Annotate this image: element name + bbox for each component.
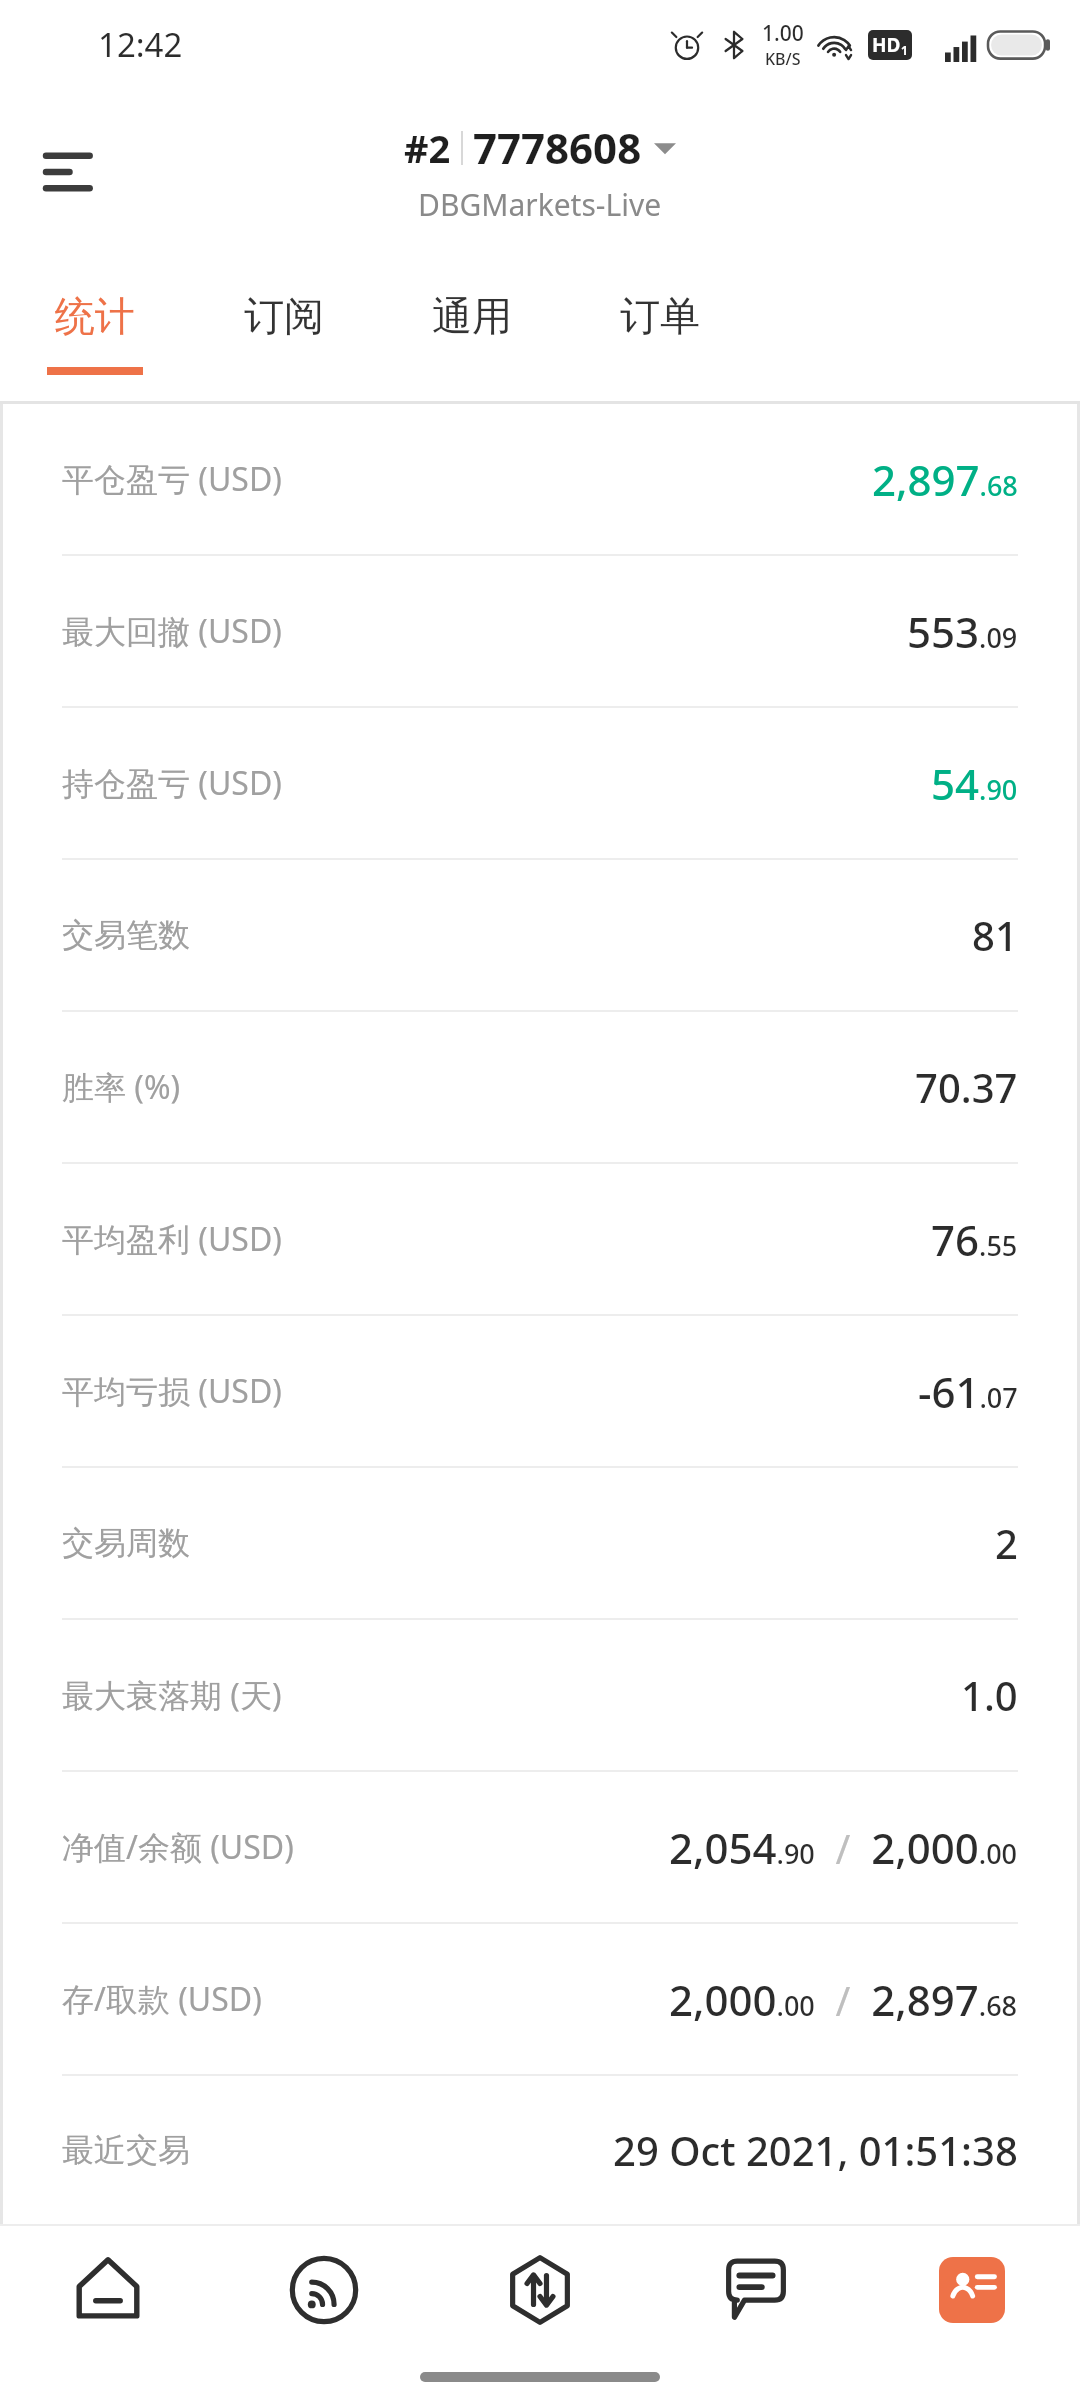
button[interactable]: 订阅 bbox=[190, 256, 378, 404]
staticText: -61.07 bbox=[918, 1363, 1018, 1420]
staticText: 通用 bbox=[432, 291, 512, 341]
staticText: 平均亏损 (USD) bbox=[62, 1369, 282, 1413]
staticText: DBGMarkets-Live bbox=[418, 184, 662, 225]
staticText: 订单 bbox=[620, 291, 700, 341]
staticText: 29 Oct 2021, 01:51:38 bbox=[613, 2123, 1018, 2177]
button[interactable]: Trade bbox=[432, 2226, 648, 2354]
staticText: 平仓盈亏 (USD) bbox=[62, 457, 282, 501]
staticText: 1 bbox=[901, 42, 908, 58]
staticText: 2 bbox=[995, 1516, 1018, 1570]
button[interactable]: 平均亏损 (USD) bbox=[0, 1316, 1080, 1466]
button[interactable]: #2 bbox=[404, 119, 676, 225]
staticText: 持仓盈亏 (USD) bbox=[62, 761, 282, 805]
staticText: 净值/余额 (USD) bbox=[62, 1825, 294, 1869]
staticText: 76.55 bbox=[931, 1211, 1018, 1268]
button[interactable]: 持仓盈亏 (USD) bbox=[0, 708, 1080, 858]
staticText: 交易周数 bbox=[62, 1523, 190, 1563]
staticText: 存/取款 (USD) bbox=[62, 1977, 262, 2021]
staticText: 最大回撤 (USD) bbox=[62, 609, 282, 653]
staticText: 12:42 bbox=[98, 22, 183, 67]
staticText: 2,054.90 / 2,000.00 bbox=[669, 1819, 1018, 1876]
button[interactable]: 最大回撤 (USD) bbox=[0, 556, 1080, 706]
button[interactable]: Menu bbox=[28, 126, 120, 218]
button[interactable]: 通用 bbox=[378, 256, 566, 404]
staticText: 最大衰落期 (天) bbox=[62, 1673, 282, 1717]
staticText: 54.90 bbox=[931, 755, 1018, 812]
button[interactable]: Home bbox=[0, 2226, 216, 2354]
staticText: 胜率 (%) bbox=[62, 1065, 181, 1109]
button[interactable]: 交易周数 bbox=[0, 1468, 1080, 1618]
staticText: 7778608 bbox=[473, 119, 642, 176]
staticText: 统计 bbox=[55, 291, 135, 341]
staticText: 553.09 bbox=[907, 603, 1018, 660]
button[interactable]: 统计 bbox=[0, 256, 190, 404]
button[interactable]: 平仓盈亏 (USD) bbox=[0, 404, 1080, 554]
staticText: 70.37 bbox=[915, 1060, 1018, 1114]
button[interactable]: 订单 bbox=[566, 256, 754, 404]
staticText: 订阅 bbox=[244, 291, 324, 341]
staticText: 81 bbox=[972, 908, 1018, 962]
button[interactable]: Quotes bbox=[216, 2226, 432, 2354]
staticText: 平均盈利 (USD) bbox=[62, 1217, 282, 1261]
button[interactable]: 净值/余额 (USD) bbox=[0, 1772, 1080, 1922]
staticText: 最近交易 bbox=[62, 2130, 190, 2170]
button[interactable]: 胜率 (%) bbox=[0, 1012, 1080, 1162]
button[interactable]: 最近交易 bbox=[0, 2076, 1080, 2224]
staticText: 1.0 bbox=[961, 1668, 1018, 1722]
button[interactable]: 交易笔数 bbox=[0, 860, 1080, 1010]
button[interactable]: 平均盈利 (USD) bbox=[0, 1164, 1080, 1314]
staticText: 1.00 bbox=[762, 19, 804, 48]
staticText: #2 bbox=[404, 122, 451, 174]
staticText: HD bbox=[872, 32, 901, 58]
staticText: 2,000.00 / 2,897.68 bbox=[669, 1971, 1018, 2028]
button[interactable]: 存/取款 (USD) bbox=[0, 1924, 1080, 2074]
button[interactable]: 最大衰落期 (天) bbox=[0, 1620, 1080, 1770]
staticText: KB/S bbox=[765, 48, 801, 70]
staticText: 交易笔数 bbox=[62, 915, 190, 955]
staticText: 2,897.68 bbox=[872, 451, 1018, 508]
button[interactable]: Messages bbox=[648, 2226, 864, 2354]
button[interactable]: Profile bbox=[864, 2226, 1080, 2354]
